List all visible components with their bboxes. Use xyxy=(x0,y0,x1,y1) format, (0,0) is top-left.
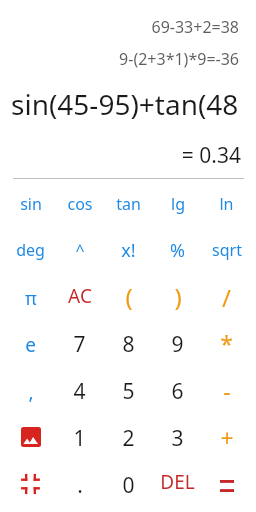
button[interactable]: π xyxy=(6,273,55,319)
staticText: 5 xyxy=(122,377,135,406)
staticText: 0 xyxy=(122,471,135,500)
staticText: 3 xyxy=(171,424,184,453)
button[interactable]: 2 xyxy=(104,413,153,460)
staticText: / xyxy=(222,281,231,314)
staticText: sin xyxy=(20,193,42,215)
staticText: ln xyxy=(219,193,234,215)
staticText: 6 xyxy=(171,377,184,406)
staticText: ^ xyxy=(75,239,85,261)
staticText: sqrt xyxy=(212,239,242,261)
button[interactable]: Collapse xyxy=(6,460,55,507)
staticText: deg xyxy=(16,239,45,261)
button[interactable]: + xyxy=(202,413,251,460)
button[interactable]: 9 xyxy=(153,319,202,366)
staticText: - xyxy=(223,375,231,406)
button[interactable]: ) xyxy=(153,273,202,319)
button[interactable]: deg xyxy=(6,227,55,273)
button[interactable]: % xyxy=(153,227,202,273)
other: Collapse xyxy=(21,474,40,494)
button[interactable]: . xyxy=(55,460,104,507)
staticText: ( xyxy=(125,280,133,313)
button[interactable]: 4 xyxy=(55,366,104,413)
staticText: 2 xyxy=(122,424,135,453)
staticText: , xyxy=(28,379,34,405)
button[interactable]: ( xyxy=(104,273,153,319)
button[interactable] xyxy=(202,460,251,507)
staticText: 1 xyxy=(73,424,86,453)
staticText: = 0.34 xyxy=(0,141,241,170)
staticText: * xyxy=(220,328,233,359)
button[interactable]: * xyxy=(202,319,251,366)
button[interactable]: 0 xyxy=(104,460,153,507)
button[interactable]: 3 xyxy=(153,413,202,460)
button[interactable]: 5 xyxy=(104,366,153,413)
staticText: 69-33+2=38 xyxy=(0,16,239,38)
button[interactable]: 6 xyxy=(153,366,202,413)
button[interactable]: e xyxy=(6,319,55,366)
button[interactable]: lg xyxy=(153,181,202,227)
staticText: sin(45-95)+tan(48 xyxy=(11,85,256,123)
button[interactable]: - xyxy=(202,366,251,413)
button[interactable]: Insert image xyxy=(6,413,55,460)
button[interactable]: 1 xyxy=(55,413,104,460)
button[interactable]: DEL xyxy=(153,460,202,507)
staticText: 7 xyxy=(73,330,86,359)
staticText: π xyxy=(25,286,37,311)
staticText: AC xyxy=(68,283,92,309)
other: Insert image xyxy=(21,427,41,447)
staticText: 9-(2+3*1)*9=-36 xyxy=(0,48,239,70)
staticText: . xyxy=(77,471,83,500)
staticText: tan xyxy=(116,193,141,215)
button[interactable]: / xyxy=(202,273,251,319)
button[interactable]: cos xyxy=(55,181,104,227)
staticText: lg xyxy=(171,193,185,215)
staticText: x! xyxy=(121,238,136,263)
staticText: cos xyxy=(67,193,93,215)
staticText: 9 xyxy=(171,330,184,359)
button[interactable]: , xyxy=(6,366,55,413)
button[interactable]: sqrt xyxy=(202,227,251,273)
button[interactable]: sin xyxy=(6,181,55,227)
staticText: e xyxy=(25,332,36,358)
staticText: 4 xyxy=(73,377,86,406)
button[interactable]: 7 xyxy=(55,319,104,366)
staticText: % xyxy=(170,238,185,263)
button[interactable]: tan xyxy=(104,181,153,227)
button[interactable]: ln xyxy=(202,181,251,227)
button[interactable]: AC xyxy=(55,273,104,319)
staticText: + xyxy=(220,422,234,453)
staticText: ) xyxy=(174,280,182,313)
staticText: DEL xyxy=(160,469,195,495)
button[interactable]: ^ xyxy=(55,227,104,273)
button[interactable]: 8 xyxy=(104,319,153,366)
staticText: 8 xyxy=(122,330,135,359)
button[interactable]: x! xyxy=(104,227,153,273)
